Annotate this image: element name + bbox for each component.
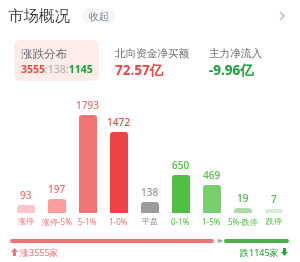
staticText: 涨跌分布 <box>21 47 67 61</box>
button[interactable]: 北向资金净买额 <box>107 40 193 81</box>
staticText: 650 <box>172 158 190 172</box>
button[interactable]: 1793 <box>72 98 103 213</box>
staticText: 北向资金净买额 <box>115 47 190 60</box>
button[interactable]: 469 <box>196 168 227 213</box>
button[interactable]: 19 <box>227 191 258 213</box>
staticText: 1-5% <box>202 216 221 227</box>
button[interactable]: More <box>272 6 292 26</box>
button[interactable]: 138 <box>134 185 165 213</box>
button[interactable]: 650 <box>165 158 196 213</box>
button[interactable]: 197 <box>41 182 72 213</box>
staticText: 收起 <box>89 10 109 23</box>
staticText: 19 <box>237 191 249 205</box>
button[interactable]: 收起 <box>82 9 116 23</box>
staticText: 0-1% <box>171 216 190 227</box>
staticText: 93 <box>20 188 32 202</box>
staticText: 平盘 <box>142 216 158 226</box>
staticText: 72.57亿 <box>115 61 164 79</box>
button[interactable]: 涨跌分布 <box>14 40 99 81</box>
staticText: 1472 <box>107 115 130 129</box>
staticText: 1-0% <box>109 216 128 227</box>
staticText: -9.96亿 <box>209 61 254 79</box>
staticText: 469 <box>203 168 221 182</box>
button[interactable]: 主力净流入 <box>201 40 287 81</box>
staticText: 跌停 <box>266 216 282 226</box>
staticText: 市场概况 <box>8 6 70 26</box>
button[interactable]: 93 <box>10 188 41 213</box>
staticText: 7 <box>271 192 277 206</box>
button[interactable]: 7 <box>258 192 289 213</box>
button[interactable]: 1472 <box>103 115 134 213</box>
staticText: 涨3555家 <box>20 246 59 258</box>
staticText: 5%-跌停 <box>228 216 258 227</box>
staticText: 138 <box>141 185 159 199</box>
staticText: 涨停-5% <box>42 216 72 227</box>
staticText: 3555:138:1145 <box>21 62 93 76</box>
staticText: 5-1% <box>78 216 97 227</box>
staticText: 主力净流入 <box>209 47 262 60</box>
staticText: 197 <box>48 182 66 196</box>
staticText: 涨停 <box>18 216 34 226</box>
staticText: 1793 <box>76 98 99 112</box>
staticText: 跌1145家 <box>240 246 279 258</box>
